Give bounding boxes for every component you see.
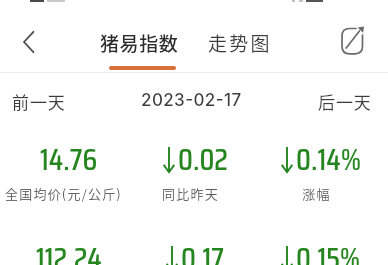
staticText: 同比昨天 (162, 184, 219, 203)
staticText: 走势图 (208, 29, 272, 57)
button[interactable]: 14.76 (0, 135, 127, 184)
staticText: 猪易指数 (100, 29, 179, 57)
button[interactable]: 0.14% (253, 135, 379, 184)
button[interactable]: 112.24 (0, 234, 127, 265)
button[interactable]: 走势图 (200, 29, 279, 75)
staticText: 0.15% (296, 234, 361, 265)
staticText: 涨幅 (302, 184, 331, 203)
button[interactable]: Back (11, 24, 47, 60)
staticText: 2023-02-17 (141, 90, 242, 111)
staticText: 前一天 (12, 89, 66, 114)
staticText: 0.17 (181, 234, 224, 265)
button[interactable]: 猪易指数 (93, 29, 185, 75)
staticText: 全国均价(元/公斤) (5, 184, 122, 203)
staticText: 0.14% (296, 135, 362, 184)
staticText: 112.24 (36, 234, 102, 265)
button[interactable]: 0.02 (127, 135, 253, 184)
staticText: 14.76 (40, 135, 98, 184)
button[interactable]: Open in browser (332, 21, 372, 61)
button[interactable]: 0.15% (253, 234, 379, 265)
button[interactable]: 0.17 (127, 234, 253, 265)
button[interactable]: 前一天 (0, 80, 78, 122)
staticText: 后一天 (318, 89, 372, 114)
button[interactable]: 后一天 (305, 80, 384, 122)
staticText: 0.02 (178, 135, 228, 184)
